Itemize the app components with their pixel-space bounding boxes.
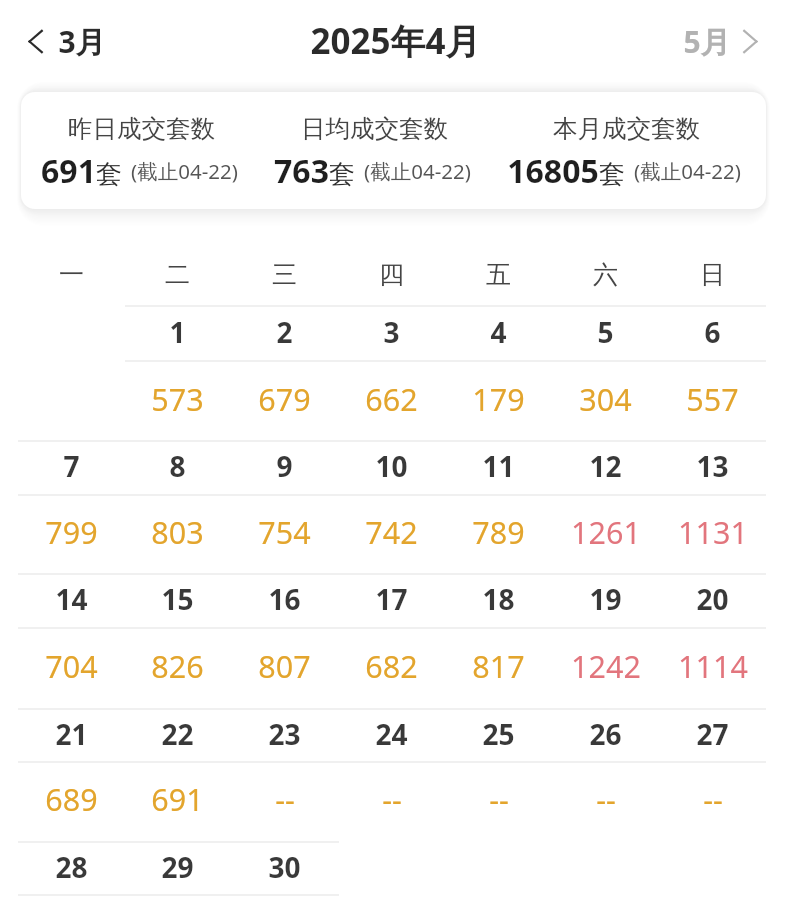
staticText: 1 xyxy=(169,313,186,351)
button[interactable]: 14 xyxy=(18,573,124,708)
staticText: 799 xyxy=(45,511,98,553)
button[interactable]: 10 xyxy=(338,440,445,573)
staticText: 11 xyxy=(482,447,515,485)
staticText: 2025年4月 xyxy=(310,17,481,65)
staticText: 803 xyxy=(151,511,204,553)
staticText: 691 xyxy=(151,778,204,820)
button[interactable]: 15 xyxy=(124,573,231,708)
staticText: (截止04-22) xyxy=(131,157,238,185)
staticText: 7 xyxy=(63,447,80,485)
button[interactable]: Previous month xyxy=(28,21,106,62)
button[interactable]: 11 xyxy=(445,440,552,573)
staticText: 14 xyxy=(55,580,88,618)
button[interactable]: 3 xyxy=(338,305,445,440)
staticText: 一 xyxy=(59,259,84,290)
staticText: 18 xyxy=(482,580,515,618)
staticText: 套 xyxy=(329,158,355,191)
staticText: 21 xyxy=(55,715,88,753)
staticText: 6 xyxy=(704,313,721,351)
staticText: 682 xyxy=(365,645,418,687)
staticText: 754 xyxy=(258,511,311,553)
button[interactable]: 13 xyxy=(659,440,766,573)
button[interactable]: 27 xyxy=(659,708,766,841)
button[interactable]: 29 xyxy=(124,841,231,894)
button[interactable]: 30 xyxy=(231,841,338,894)
staticText: 套 xyxy=(96,158,122,191)
staticText: 30 xyxy=(268,848,301,886)
staticText: 昨日成交套数 xyxy=(68,113,215,144)
button[interactable]: 16 xyxy=(231,573,338,708)
staticText: 10 xyxy=(375,447,408,485)
staticText: 826 xyxy=(151,645,204,687)
button[interactable]: 19 xyxy=(552,573,659,708)
button[interactable]: 28 xyxy=(18,841,124,894)
staticText: 27 xyxy=(696,715,729,753)
staticText: 679 xyxy=(258,378,311,420)
staticText: -- xyxy=(703,778,723,820)
staticText: 3月 xyxy=(58,21,106,62)
staticText: (截止04-22) xyxy=(634,157,741,185)
staticText: 25 xyxy=(482,715,515,753)
staticText: 3 xyxy=(383,313,400,351)
staticText: 662 xyxy=(365,378,418,420)
button[interactable]: 4 xyxy=(445,305,552,440)
staticText: 789 xyxy=(472,511,525,553)
staticText: -- xyxy=(275,778,295,820)
staticText: 22 xyxy=(161,715,194,753)
button[interactable]: 5 xyxy=(552,305,659,440)
button[interactable]: 7 xyxy=(18,440,124,573)
button[interactable]: 24 xyxy=(338,708,445,841)
button[interactable]: 25 xyxy=(445,708,552,841)
button[interactable]: 1 xyxy=(124,305,231,440)
button[interactable]: 12 xyxy=(552,440,659,573)
staticText: 573 xyxy=(151,378,204,420)
staticText: 704 xyxy=(45,645,98,687)
button[interactable]: 昨日成交套数 xyxy=(21,92,766,209)
button[interactable]: 26 xyxy=(552,708,659,841)
staticText: 763 xyxy=(274,149,329,193)
staticText: 四 xyxy=(379,259,404,290)
staticText: 23 xyxy=(268,715,301,753)
staticText: 15 xyxy=(161,580,194,618)
staticText: 日 xyxy=(700,259,725,290)
staticText: 817 xyxy=(472,645,525,687)
staticText: 六 xyxy=(593,259,618,290)
button[interactable]: 9 xyxy=(231,440,338,573)
staticText: 689 xyxy=(45,778,98,820)
staticText: 26 xyxy=(589,715,622,753)
staticText: -- xyxy=(382,778,402,820)
staticText: 742 xyxy=(365,511,418,553)
staticText: 304 xyxy=(579,378,632,420)
button[interactable]: 6 xyxy=(659,305,766,440)
button[interactable]: 20 xyxy=(659,573,766,708)
staticText: 17 xyxy=(375,580,408,618)
staticText: 13 xyxy=(696,447,729,485)
button[interactable]: 23 xyxy=(231,708,338,841)
staticText: 1242 xyxy=(571,645,641,687)
button[interactable]: 2 xyxy=(231,305,338,440)
staticText: 1261 xyxy=(571,511,641,553)
staticText: 807 xyxy=(258,645,311,687)
button[interactable]: 8 xyxy=(124,440,231,573)
staticText: 691 xyxy=(41,149,96,193)
staticText: 三 xyxy=(272,259,297,290)
button[interactable]: 5月 xyxy=(683,21,758,62)
staticText: -- xyxy=(596,778,616,820)
staticText: 16805 xyxy=(507,149,599,193)
staticText: 1131 xyxy=(678,511,748,553)
staticText: 16 xyxy=(268,580,301,618)
staticText: 本月成交套数 xyxy=(553,113,700,144)
staticText: 8 xyxy=(169,447,186,485)
button[interactable]: 17 xyxy=(338,573,445,708)
staticText: 20 xyxy=(696,580,729,618)
staticText: 五 xyxy=(486,259,511,290)
staticText: 29 xyxy=(161,848,194,886)
staticText: -- xyxy=(489,778,509,820)
staticText: 日均成交套数 xyxy=(301,113,448,144)
button[interactable]: 18 xyxy=(445,573,552,708)
other: Next month xyxy=(743,30,758,53)
button[interactable]: 22 xyxy=(124,708,231,841)
staticText: 2 xyxy=(276,313,293,351)
button[interactable]: 21 xyxy=(18,708,124,841)
other: Previous month xyxy=(28,30,43,53)
